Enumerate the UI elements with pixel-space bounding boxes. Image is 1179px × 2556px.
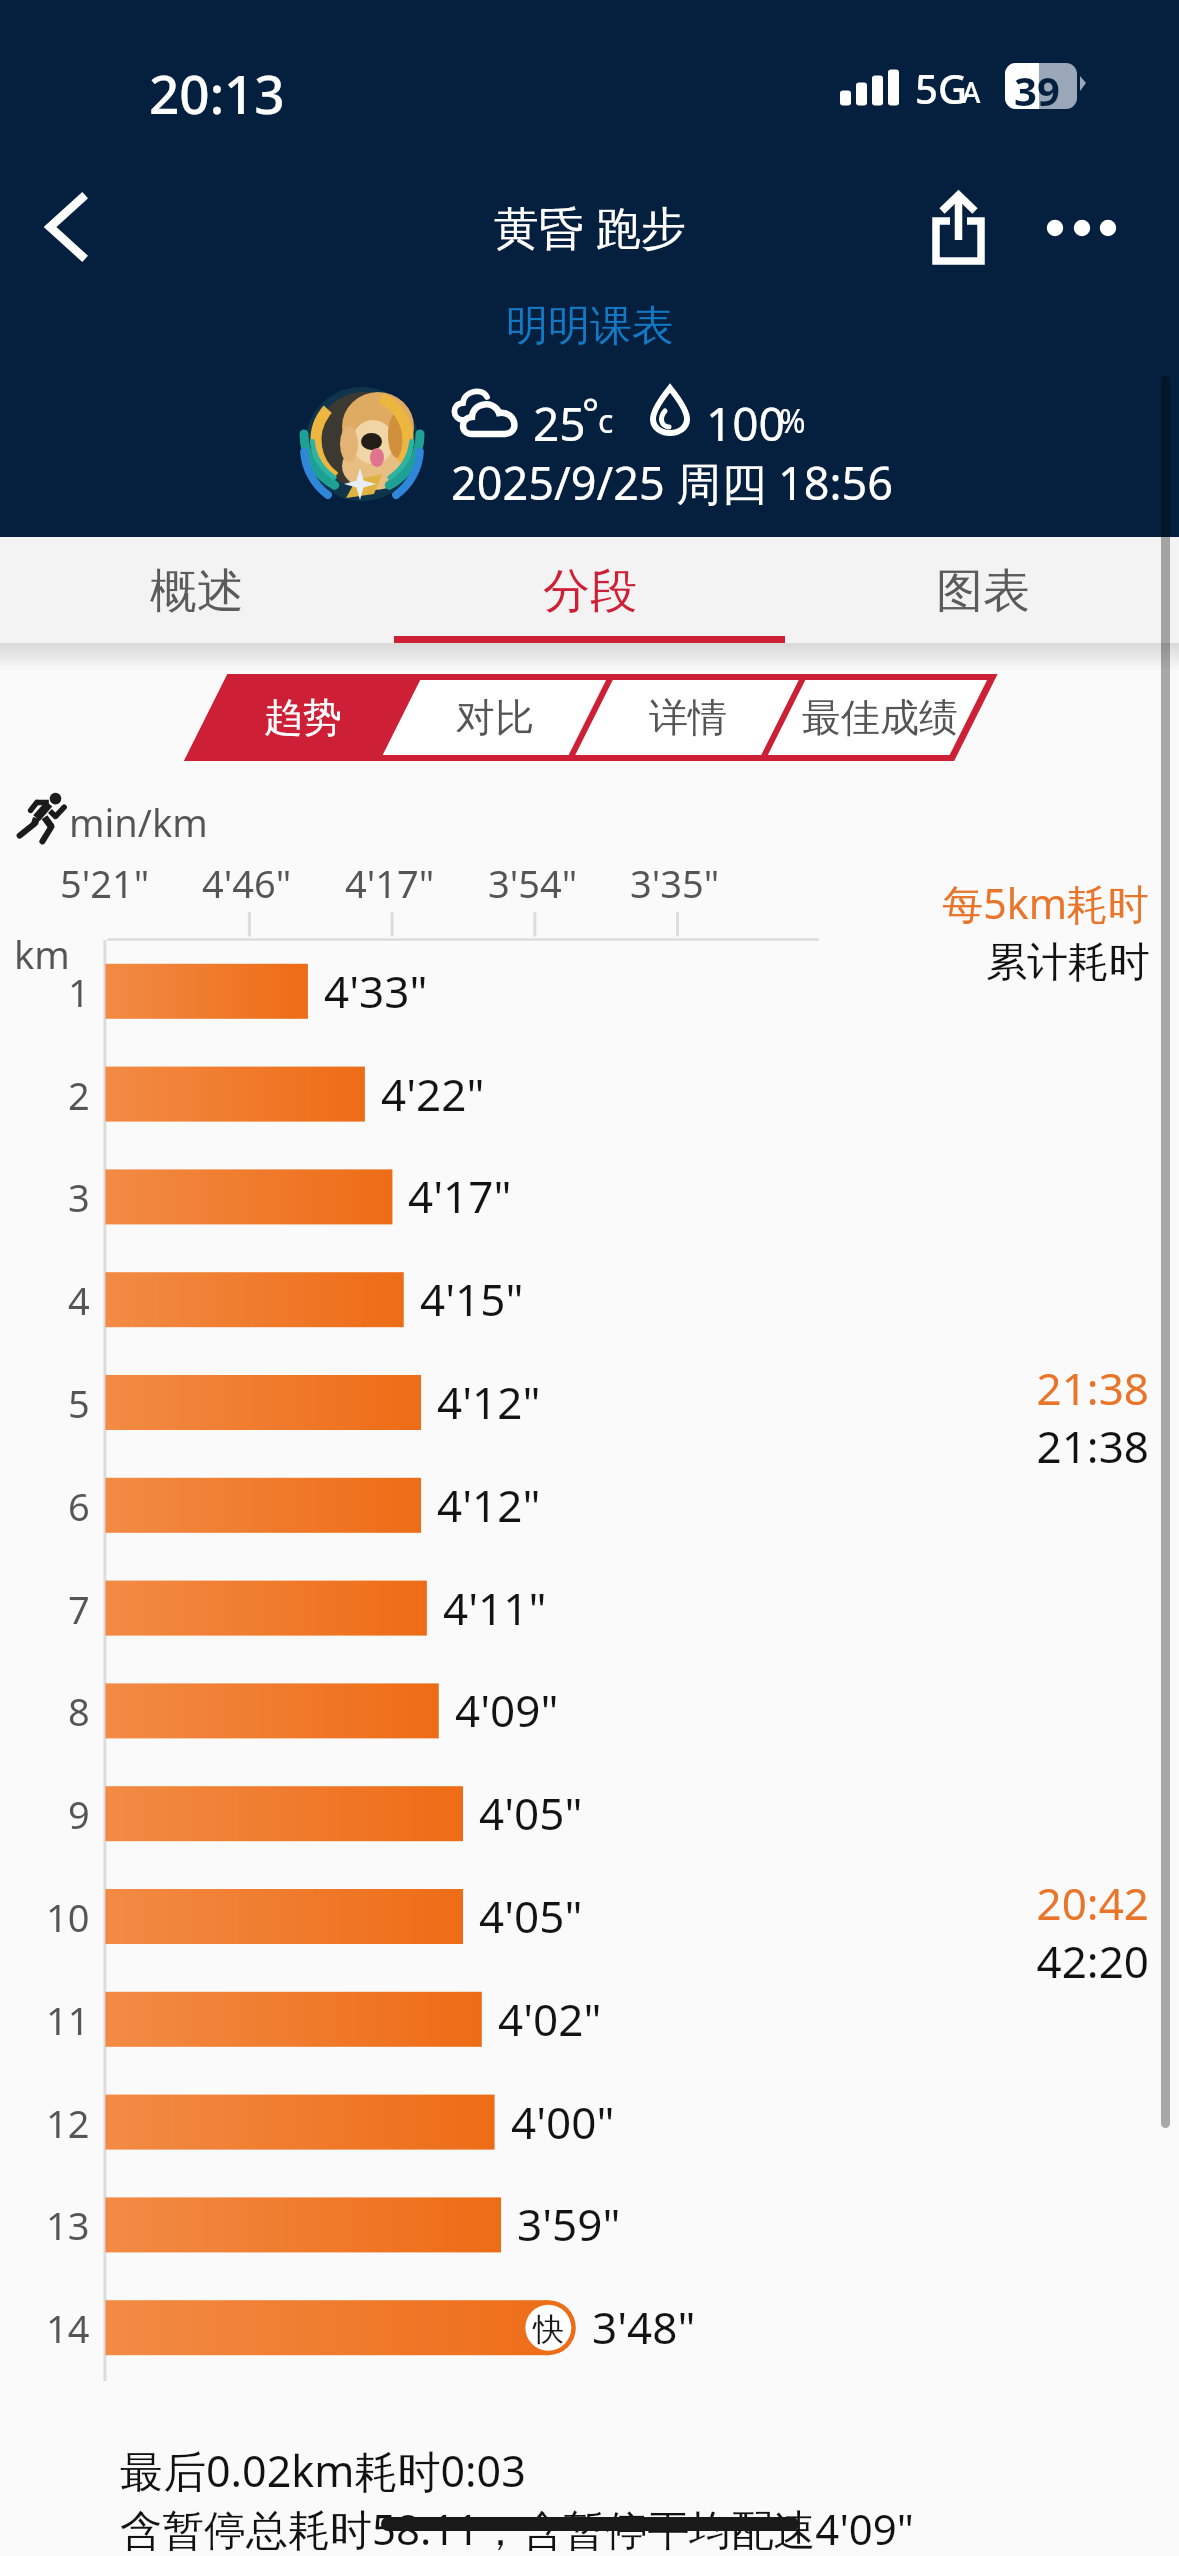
button[interactable]: 最佳成绩 xyxy=(783,674,976,761)
button[interactable]: More options xyxy=(1030,194,1130,262)
button[interactable]: 趋势 xyxy=(206,674,399,761)
staticText: 黄昏 跑步 xyxy=(494,196,686,257)
staticText: 4'15" xyxy=(420,1269,524,1324)
staticText: 快 xyxy=(533,2310,564,2349)
button[interactable]: 概述 xyxy=(0,537,393,643)
staticText: 4'05" xyxy=(479,1783,583,1838)
staticText: 3'59" xyxy=(517,2194,621,2249)
staticText: c xyxy=(598,399,614,443)
staticText: 42:20 xyxy=(0,1931,1149,1991)
staticText: 7 xyxy=(68,1583,90,1635)
staticText: 概述 xyxy=(150,562,244,621)
staticText: 5 xyxy=(68,1377,90,1429)
staticText: 4'12" xyxy=(437,1372,541,1427)
staticText: 4'09" xyxy=(455,1680,559,1735)
staticText: 4 xyxy=(68,1274,90,1326)
staticText: 分段 xyxy=(543,562,637,621)
staticText: ° xyxy=(582,385,600,439)
staticText: 最佳成绩 xyxy=(802,693,958,742)
staticText: 100 xyxy=(706,392,785,455)
staticText: min/km xyxy=(69,796,208,848)
staticText: % xyxy=(779,399,806,443)
staticText: 4'11" xyxy=(443,1578,547,1633)
staticText: 2 xyxy=(68,1069,90,1121)
staticText: 详情 xyxy=(649,693,727,742)
staticText: 10 xyxy=(46,1891,90,1943)
staticText: 累计耗时 xyxy=(0,937,1150,989)
staticText: 9 xyxy=(68,1788,90,1840)
staticText: 对比 xyxy=(456,693,534,742)
staticText: km xyxy=(14,928,70,980)
staticText: 21:38 xyxy=(0,1416,1149,1476)
staticText: 4'00" xyxy=(511,2092,615,2147)
staticText: 5'21" xyxy=(60,857,150,909)
staticText: 25 xyxy=(533,392,586,455)
staticText: 4'46" xyxy=(202,857,292,909)
staticText: 3'48" xyxy=(592,2297,696,2352)
staticText: 趋势 xyxy=(264,693,342,742)
staticText: A xyxy=(962,73,981,111)
staticText: 20:42 xyxy=(0,1873,1149,1933)
staticText: 4'17" xyxy=(408,1166,512,1221)
staticText: 4'05" xyxy=(479,1886,583,1941)
staticText: 4'22" xyxy=(381,1064,485,1119)
staticText: 图表 xyxy=(936,562,1030,621)
staticText: 21:38 xyxy=(0,1358,1149,1418)
staticText: 13 xyxy=(46,2199,90,2251)
staticText: 6 xyxy=(68,1480,90,1532)
staticText: 12 xyxy=(46,2097,90,2149)
staticText: 明明课表 xyxy=(506,300,674,353)
button[interactable]: 详情 xyxy=(591,674,784,761)
staticText: 3 xyxy=(68,1171,90,1223)
staticText: 4'02" xyxy=(498,1989,602,2044)
staticText: 11 xyxy=(46,1994,90,2046)
staticText: 4'17" xyxy=(345,857,435,909)
button[interactable]: 分段 xyxy=(393,537,786,643)
staticText: 20:13 xyxy=(149,57,285,129)
button[interactable]: 黄昏 跑步 xyxy=(482,192,698,261)
button[interactable]: Back xyxy=(22,178,118,276)
staticText: 39 xyxy=(1014,63,1060,117)
button[interactable]: 图表 xyxy=(786,537,1179,643)
staticText: 2025/9/25 周四 18:56 xyxy=(451,452,894,513)
staticText: 8 xyxy=(68,1685,90,1737)
staticText: 1 xyxy=(68,966,90,1018)
staticText: 4'33" xyxy=(324,961,428,1016)
staticText: 5G xyxy=(915,61,967,115)
staticText: 含暂停总耗时58:11，含暂停平均配速4'09" xyxy=(120,2500,915,2556)
staticText: 3'35" xyxy=(630,857,720,909)
button[interactable]: 明明课表 xyxy=(498,300,682,353)
staticText: 4'12" xyxy=(437,1475,541,1530)
staticText: 3'54" xyxy=(488,857,578,909)
button[interactable]: Share xyxy=(920,182,1000,274)
staticText: 14 xyxy=(46,2302,90,2354)
button[interactable]: 对比 xyxy=(398,674,591,761)
staticText: 每5km耗时 xyxy=(0,875,1149,931)
staticText: 最后0.02km耗时0:03 xyxy=(120,2441,526,2500)
